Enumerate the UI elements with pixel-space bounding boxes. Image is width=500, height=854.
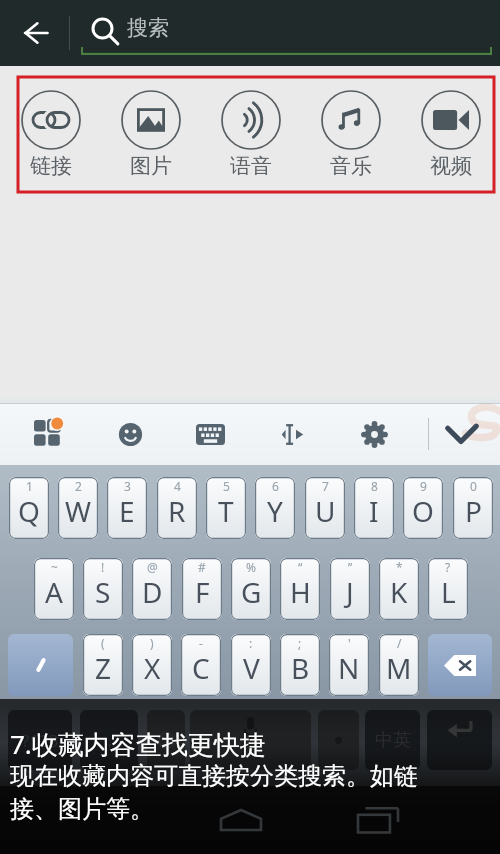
button[interactable]: K — [379, 558, 419, 620]
staticText: 3 — [124, 478, 131, 494]
button[interactable]: 音乐 — [309, 86, 393, 182]
staticText: H — [290, 573, 311, 611]
staticText: O — [412, 492, 434, 530]
button[interactable]: E — [107, 477, 147, 539]
staticText: # — [198, 559, 206, 575]
staticText: ' — [348, 635, 351, 651]
button[interactable]: Apps — [20, 404, 76, 464]
button[interactable]: Home — [213, 800, 269, 840]
button[interactable]: 搜索 — [81, 4, 492, 54]
staticText: A — [45, 573, 63, 611]
staticText: ?123 — [22, 729, 59, 752]
staticText: - — [199, 635, 203, 651]
button[interactable]: Recents — [350, 800, 406, 840]
staticText: Q — [18, 492, 40, 530]
button[interactable]: Settings — [346, 404, 402, 464]
button[interactable]: Symbols — [8, 710, 72, 770]
staticText: F — [195, 573, 210, 611]
button[interactable]: 图片 — [109, 86, 193, 182]
button[interactable]: O — [403, 477, 443, 539]
staticText: ; — [298, 635, 302, 651]
staticText: M — [386, 649, 412, 687]
staticText: 搜索 — [127, 15, 169, 41]
staticText: 链接 — [30, 153, 72, 179]
button[interactable]: Chinese / English — [365, 710, 420, 770]
staticText: U — [315, 492, 336, 530]
button[interactable]: B — [280, 634, 320, 696]
button[interactable]: Done — [434, 404, 490, 464]
staticText: ” — [348, 559, 353, 575]
button[interactable]: Comma — [80, 710, 138, 770]
staticText: 5 — [223, 478, 230, 494]
staticText: E — [119, 492, 135, 530]
button[interactable]: C — [181, 634, 221, 696]
button[interactable]: D — [132, 558, 172, 620]
staticText: “ — [298, 559, 303, 575]
staticText: 6 — [272, 478, 279, 494]
button[interactable]: N — [329, 634, 369, 696]
button[interactable]: H — [280, 558, 320, 620]
staticText: K — [390, 573, 408, 611]
button[interactable]: Z — [83, 634, 123, 696]
button[interactable]: Emoji — [102, 404, 158, 464]
button[interactable]: M — [379, 634, 419, 696]
staticText: ! — [101, 559, 105, 575]
button[interactable]: F — [182, 558, 222, 620]
button[interactable]: R — [157, 477, 197, 539]
staticText: 7.收藏内容查找更快捷 — [10, 726, 266, 762]
staticText: 7 — [322, 478, 329, 494]
button[interactable]: Back — [12, 9, 60, 57]
staticText: / — [397, 635, 402, 651]
staticText: C — [192, 649, 210, 687]
staticText: T — [218, 492, 234, 530]
button[interactable]: Emoji — [147, 710, 185, 770]
button[interactable]: V — [231, 634, 271, 696]
button[interactable]: P — [453, 477, 493, 539]
button[interactable]: L — [428, 558, 468, 620]
staticText: 0 — [470, 478, 477, 494]
button[interactable]: U — [305, 477, 345, 539]
staticText: ? — [445, 559, 451, 575]
staticText: G — [241, 573, 262, 611]
staticText: @ — [147, 559, 158, 575]
staticText: Y — [267, 492, 283, 530]
button[interactable]: Cursor — [264, 404, 320, 464]
button[interactable]: Shift — [8, 634, 73, 696]
staticText: 1 — [26, 478, 33, 494]
button[interactable]: Y — [255, 477, 295, 539]
button[interactable]: S — [83, 558, 123, 620]
button[interactable]: A — [34, 558, 74, 620]
staticText: ~ — [51, 559, 58, 575]
staticText: 音乐 — [330, 153, 372, 179]
button[interactable]: 视频 — [409, 86, 493, 182]
staticText: 中英 — [375, 729, 411, 752]
staticText: Z — [95, 649, 112, 687]
button[interactable]: Space / Voice input — [190, 710, 311, 770]
button[interactable]: 语音 — [209, 86, 293, 182]
staticText: S — [95, 573, 111, 611]
staticText: R — [168, 492, 186, 530]
staticText: N — [338, 649, 360, 687]
button[interactable]: Q — [9, 477, 49, 539]
button[interactable]: 链接 — [9, 86, 93, 182]
staticText: 8 — [371, 478, 378, 494]
staticText: 现在收藏内容可直接按分类搜索。如链 — [10, 761, 418, 791]
staticText: I — [369, 492, 379, 530]
button[interactable]: J — [330, 558, 370, 620]
button[interactable]: I — [354, 477, 394, 539]
button[interactable]: G — [231, 558, 271, 620]
button[interactable]: Period — [318, 710, 359, 770]
staticText: 语音 — [230, 153, 272, 179]
staticText: 9 — [420, 478, 427, 494]
button[interactable]: Enter — [427, 710, 492, 770]
button[interactable]: X — [132, 634, 172, 696]
staticText: J — [346, 573, 354, 611]
staticText: B — [291, 649, 310, 687]
staticText: ) — [150, 635, 154, 651]
button[interactable]: W — [58, 477, 98, 539]
button[interactable]: Keyboard — [182, 404, 238, 464]
staticText: 图片 — [130, 153, 172, 179]
button[interactable]: T — [206, 477, 246, 539]
staticText: * — [396, 559, 403, 575]
button[interactable]: Backspace — [428, 634, 492, 696]
